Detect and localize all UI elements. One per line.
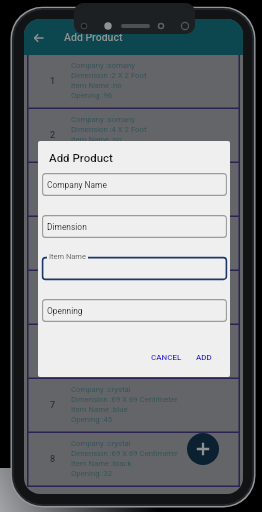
- staticText: 1: [50, 76, 56, 87]
- staticText: Company :crystal: [71, 439, 131, 448]
- staticText: Company :crystal: [71, 223, 131, 232]
- staticText: Item Name :black: [71, 459, 132, 468]
- staticText: Dimension :2 X 2 Foot: [71, 71, 147, 80]
- staticText: 2: [50, 130, 56, 141]
- staticText: Company :somany: [71, 115, 135, 124]
- staticText: Dimension: [47, 222, 87, 232]
- button[interactable]: Dimension: [42, 215, 227, 238]
- staticText: Opening :55: [71, 253, 113, 262]
- button[interactable]: 1: [27, 55, 240, 109]
- button[interactable]: 7: [27, 379, 240, 433]
- staticText: Item Name :white: [71, 189, 132, 198]
- staticText: Company :somany: [71, 61, 135, 70]
- staticText: Opening :32: [71, 469, 113, 478]
- staticText: Opening :96: [71, 91, 113, 100]
- button[interactable]: ADD: [191, 349, 217, 366]
- button[interactable]: 4: [27, 217, 240, 271]
- staticText: 5: [50, 292, 56, 303]
- button[interactable]: 6: [27, 325, 240, 379]
- staticText: Company Name: [47, 180, 107, 190]
- staticText: Dimension :4 X 2 Foot: [71, 125, 147, 134]
- staticText: Dimension :69 X 69 Centimeter: [71, 179, 178, 188]
- staticText: Company :crystal: [71, 277, 131, 286]
- button[interactable]: 8: [27, 433, 240, 487]
- button[interactable]: Back: [28, 27, 50, 49]
- button[interactable]: Company Name: [42, 173, 227, 196]
- button[interactable]: Add product: [187, 433, 219, 465]
- staticText: Company :crystal: [71, 169, 131, 178]
- staticText: CANCEL: [151, 353, 182, 362]
- button[interactable]: 2: [27, 109, 240, 163]
- staticText: Dimension :69 X 69 Centimeter: [71, 395, 178, 404]
- button[interactable]: CANCEL: [146, 349, 187, 366]
- button[interactable]: 5: [27, 271, 240, 325]
- button[interactable]: 3: [27, 163, 240, 217]
- staticText: Item Name: [49, 252, 86, 261]
- staticText: Opening :45: [71, 415, 113, 424]
- staticText: Item Name :blue: [71, 405, 128, 414]
- staticText: Item Name :no: [71, 81, 122, 90]
- button[interactable]: Item Name: [42, 257, 227, 280]
- staticText: Company :crystal: [71, 385, 131, 394]
- staticText: ADD: [196, 353, 212, 362]
- staticText: Add Product: [49, 151, 113, 164]
- staticText: 8: [50, 454, 56, 465]
- staticText: Dimension :69 X 69 Centimeter: [71, 233, 178, 242]
- staticText: Item Name :no: [71, 135, 122, 144]
- staticText: Opening :50: [71, 307, 113, 316]
- staticText: Item Name :brown: [71, 297, 135, 306]
- staticText: 7: [50, 400, 56, 411]
- staticText: 3: [50, 184, 56, 195]
- staticText: Dimension :69 X 69 Centimeter: [71, 449, 178, 458]
- staticText: Add Product: [64, 31, 123, 43]
- button[interactable]: Openning: [42, 299, 227, 322]
- staticText: Openning: [47, 306, 83, 316]
